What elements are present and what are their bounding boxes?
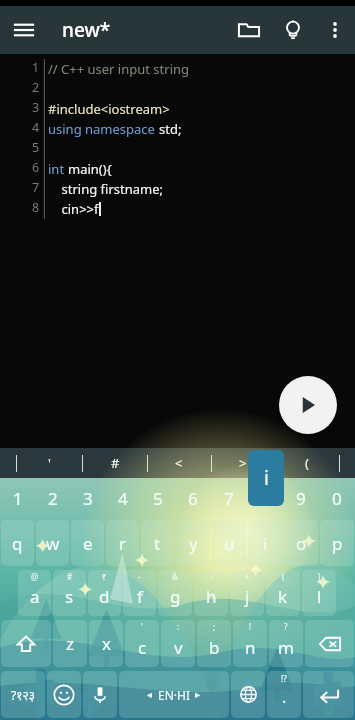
staticText: e	[83, 532, 93, 555]
staticText: new*	[62, 17, 111, 43]
staticText: 7	[32, 179, 40, 196]
staticText: ?	[284, 621, 288, 632]
staticText: a	[30, 585, 40, 608]
button[interactable]: p	[320, 520, 354, 566]
staticText: string firstname;	[48, 180, 163, 198]
staticText: std;	[159, 120, 182, 138]
staticText: g	[170, 585, 181, 608]
button[interactable]: Menu	[0, 6, 48, 54]
staticText: u	[224, 532, 235, 555]
button[interactable]: x	[89, 620, 123, 667]
button[interactable]: (	[291, 448, 323, 478]
button[interactable]: e	[71, 520, 104, 566]
button[interactable]: y	[176, 520, 210, 566]
staticText: 3	[32, 99, 40, 116]
staticText: 3	[83, 487, 93, 510]
button[interactable]: #	[53, 570, 86, 616]
button[interactable]: Emoji	[47, 671, 81, 718]
button[interactable]: 4	[105, 478, 140, 518]
button[interactable]: 2	[35, 478, 70, 518]
button[interactable]: 6	[175, 478, 211, 518]
button[interactable]: 7	[211, 478, 247, 518]
button[interactable]: ?१२३	[1, 671, 45, 718]
button[interactable]: o	[284, 520, 318, 566]
button[interactable]	[259, 448, 291, 478]
button[interactable]: @	[18, 570, 51, 616]
staticText: @	[31, 571, 39, 582]
button[interactable]: 1	[0, 54, 355, 448]
button[interactable]	[66, 448, 99, 478]
button[interactable]: ◂	[119, 671, 229, 718]
button[interactable]: Change language	[231, 671, 265, 718]
button[interactable]: Voice input	[83, 671, 117, 718]
button[interactable]: w	[36, 520, 69, 566]
button[interactable]: 0	[319, 478, 355, 518]
staticText: l	[317, 585, 322, 608]
staticText: q	[12, 532, 23, 555]
button[interactable]: !?	[267, 671, 301, 718]
staticText: b	[209, 636, 220, 659]
staticText: ◂	[147, 689, 153, 701]
button[interactable]	[323, 448, 355, 478]
staticText: #	[67, 571, 73, 582]
button[interactable]: z	[53, 620, 87, 667]
button[interactable]: t	[141, 520, 174, 566]
button[interactable]: -	[123, 570, 156, 616]
staticText: !?	[281, 673, 287, 684]
staticText: w	[46, 532, 60, 555]
staticText: 9	[296, 487, 306, 510]
staticText: // C++ user input string	[48, 60, 190, 78]
button[interactable]: Shift	[1, 620, 51, 667]
button[interactable]: Open folder	[227, 6, 271, 54]
button[interactable]: +	[230, 570, 264, 616]
button[interactable]: q	[1, 520, 34, 566]
staticText: &	[172, 571, 178, 582]
staticText: d	[99, 585, 110, 608]
staticText: int	[48, 160, 68, 178]
staticText: o	[296, 532, 307, 555]
button[interactable]: #	[99, 448, 131, 478]
staticText: 2	[32, 79, 40, 96]
button[interactable]: Hints	[271, 6, 315, 54]
button[interactable]: 1	[0, 478, 35, 518]
button[interactable]: ?	[269, 620, 303, 667]
staticText: (	[305, 454, 309, 472]
button[interactable]	[195, 448, 227, 478]
button[interactable]: '	[33, 448, 66, 478]
staticText: i	[264, 465, 269, 491]
button[interactable]: ₹	[88, 570, 121, 616]
staticText: '	[48, 454, 51, 472]
button[interactable]: i	[248, 520, 282, 566]
button[interactable]: !	[233, 620, 267, 667]
staticText: z	[66, 632, 74, 655]
button[interactable]: Enter	[303, 671, 354, 718]
button[interactable]: Backspace	[305, 620, 354, 667]
button[interactable]: >	[227, 448, 259, 478]
staticText: !	[249, 621, 252, 632]
button[interactable]: &	[158, 570, 192, 616]
button[interactable]: ;	[197, 620, 231, 667]
button[interactable]: :	[161, 620, 195, 667]
button[interactable]	[131, 448, 163, 478]
button[interactable]: Run	[279, 376, 337, 434]
button[interactable]	[0, 448, 33, 478]
button[interactable]: More options	[315, 6, 355, 54]
staticText: :	[177, 621, 180, 632]
button[interactable]: )	[302, 570, 336, 616]
staticText: <	[175, 454, 183, 472]
staticText: ▸	[195, 689, 201, 701]
button[interactable]: 3	[70, 478, 105, 518]
button[interactable]: (	[266, 570, 300, 616]
button[interactable]: 5	[140, 478, 175, 518]
button[interactable]: r	[106, 520, 139, 566]
staticText: ;	[213, 621, 216, 632]
button[interactable]: '	[125, 620, 159, 667]
button[interactable]: u	[212, 520, 246, 566]
staticText: cin>>f	[48, 200, 99, 218]
button[interactable]: -	[194, 570, 228, 616]
button[interactable]: 8	[247, 478, 283, 518]
staticText: #include<iostream>	[48, 100, 170, 118]
staticText: j	[245, 585, 250, 608]
button[interactable]: 9	[283, 478, 319, 518]
button[interactable]: <	[163, 448, 195, 478]
